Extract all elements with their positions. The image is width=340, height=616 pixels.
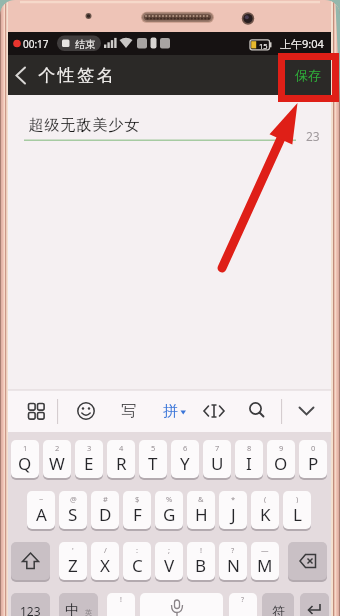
staticText: ( <box>264 494 267 503</box>
staticText: Z <box>68 554 78 577</box>
staticText: & <box>198 494 204 503</box>
button[interactable] <box>140 593 223 616</box>
staticText: L <box>293 503 302 526</box>
staticText: M <box>257 554 273 577</box>
staticText: H <box>195 503 208 526</box>
button[interactable] <box>116 392 154 430</box>
staticText: Q <box>18 452 32 475</box>
staticText: 5 <box>151 443 156 452</box>
staticText: V <box>164 554 175 577</box>
staticText: ; <box>168 545 171 554</box>
button[interactable]: 8 <box>235 440 263 478</box>
staticText: G <box>163 503 176 526</box>
button[interactable] <box>294 392 332 430</box>
button[interactable]: ) <box>283 491 311 529</box>
button[interactable]: ! <box>107 593 135 616</box>
staticText: K <box>260 503 271 526</box>
button[interactable]: 保存 <box>286 61 330 89</box>
staticText: X <box>100 554 110 577</box>
button[interactable]: ; <box>155 542 183 580</box>
button[interactable] <box>288 542 327 580</box>
staticText: F <box>133 503 142 526</box>
staticText: 拼 <box>163 402 178 421</box>
button[interactable] <box>10 57 38 93</box>
staticText: 上午9:04 <box>280 36 324 51</box>
staticText: 00:17 <box>23 37 49 51</box>
button[interactable] <box>158 392 196 430</box>
button[interactable]: 3 <box>75 440 103 478</box>
button[interactable]: 4 <box>107 440 135 478</box>
button[interactable]: / <box>91 542 119 580</box>
staticText: ) <box>296 494 299 503</box>
button[interactable] <box>74 392 112 430</box>
staticText: J <box>231 503 236 526</box>
button[interactable]: @ <box>59 491 87 529</box>
staticText: P <box>308 452 319 475</box>
button[interactable]: # <box>91 491 119 529</box>
staticText: $ <box>135 494 140 503</box>
staticText: 6 <box>183 443 188 452</box>
staticText: * <box>231 494 236 503</box>
staticText: 结束 <box>75 38 95 51</box>
button[interactable]: ' <box>59 542 87 580</box>
button[interactable]: ? <box>229 593 257 616</box>
staticText: A <box>36 503 47 526</box>
staticText: ! <box>120 595 122 604</box>
staticText: R <box>116 452 127 475</box>
button[interactable]: * <box>219 491 247 529</box>
button[interactable]: & <box>187 491 215 529</box>
button[interactable] <box>245 392 283 430</box>
button[interactable]: ! <box>187 542 215 580</box>
staticText: 15 <box>259 41 268 51</box>
button[interactable]: 符 <box>262 593 294 616</box>
staticText: 1 <box>23 443 28 452</box>
button[interactable] <box>11 542 50 580</box>
staticText: U <box>211 452 224 475</box>
staticText: I <box>246 452 252 475</box>
staticText: W <box>49 452 65 475</box>
button[interactable]: 9 <box>267 440 295 478</box>
button[interactable]: 7 <box>203 440 231 478</box>
staticText: 超级无敌美少女 <box>28 116 140 134</box>
staticText: C <box>132 554 143 577</box>
staticText: 23 <box>306 128 320 144</box>
staticText: 4 <box>119 443 124 452</box>
button[interactable]: ? <box>219 542 247 580</box>
button[interactable] <box>202 392 240 430</box>
button[interactable]: — <box>251 542 279 580</box>
staticText: ? <box>231 545 235 554</box>
button[interactable]: 123 <box>11 593 50 616</box>
button[interactable]: 0 <box>299 440 327 478</box>
staticText: 2 <box>55 443 60 452</box>
button[interactable]: ~ <box>27 491 55 529</box>
staticText: D <box>99 503 112 526</box>
staticText: ? <box>241 595 245 604</box>
button[interactable]: : <box>123 542 151 580</box>
staticText: 123 <box>20 603 41 616</box>
button[interactable]: 5 <box>139 440 167 478</box>
staticText: ~ <box>39 494 44 503</box>
staticText: 保存 <box>295 67 321 83</box>
staticText: 写 <box>121 402 136 421</box>
staticText: / <box>104 545 107 554</box>
button[interactable]: 1 <box>11 440 39 478</box>
button[interactable]: 6 <box>171 440 199 478</box>
staticText: 符 <box>272 603 285 616</box>
staticText: 9 <box>279 443 284 452</box>
button[interactable]: 2 <box>43 440 71 478</box>
button[interactable]: 中 <box>59 593 98 616</box>
button[interactable] <box>300 593 329 616</box>
button[interactable] <box>24 392 62 430</box>
staticText: % <box>166 494 173 503</box>
button[interactable]: $ <box>123 491 151 529</box>
staticText: 8 <box>247 443 252 452</box>
staticText: T <box>148 452 158 475</box>
staticText: ! <box>200 545 203 554</box>
button[interactable]: ( <box>251 491 279 529</box>
button[interactable]: % <box>155 491 183 529</box>
staticText: 中 <box>65 602 79 616</box>
staticText: # <box>103 494 108 503</box>
staticText: ' <box>72 545 74 554</box>
staticText: N <box>227 554 240 577</box>
staticText: 0 <box>311 443 316 452</box>
